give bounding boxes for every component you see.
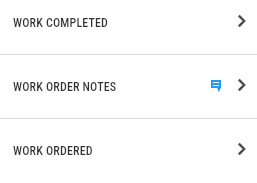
staticText: WORK COMPLETED bbox=[13, 16, 109, 30]
button[interactable]: WORK ORDERED bbox=[0, 119, 257, 183]
other: Notes bbox=[211, 80, 221, 92]
other: Open bbox=[237, 13, 246, 29]
button[interactable]: WORK ORDER NOTES bbox=[0, 55, 257, 119]
other: Open bbox=[237, 77, 246, 93]
staticText: WORK ORDERED bbox=[13, 144, 93, 158]
other: Open bbox=[237, 141, 246, 157]
staticText: WORK ORDER NOTES bbox=[13, 80, 117, 94]
button[interactable]: WORK COMPLETED bbox=[0, 0, 257, 55]
